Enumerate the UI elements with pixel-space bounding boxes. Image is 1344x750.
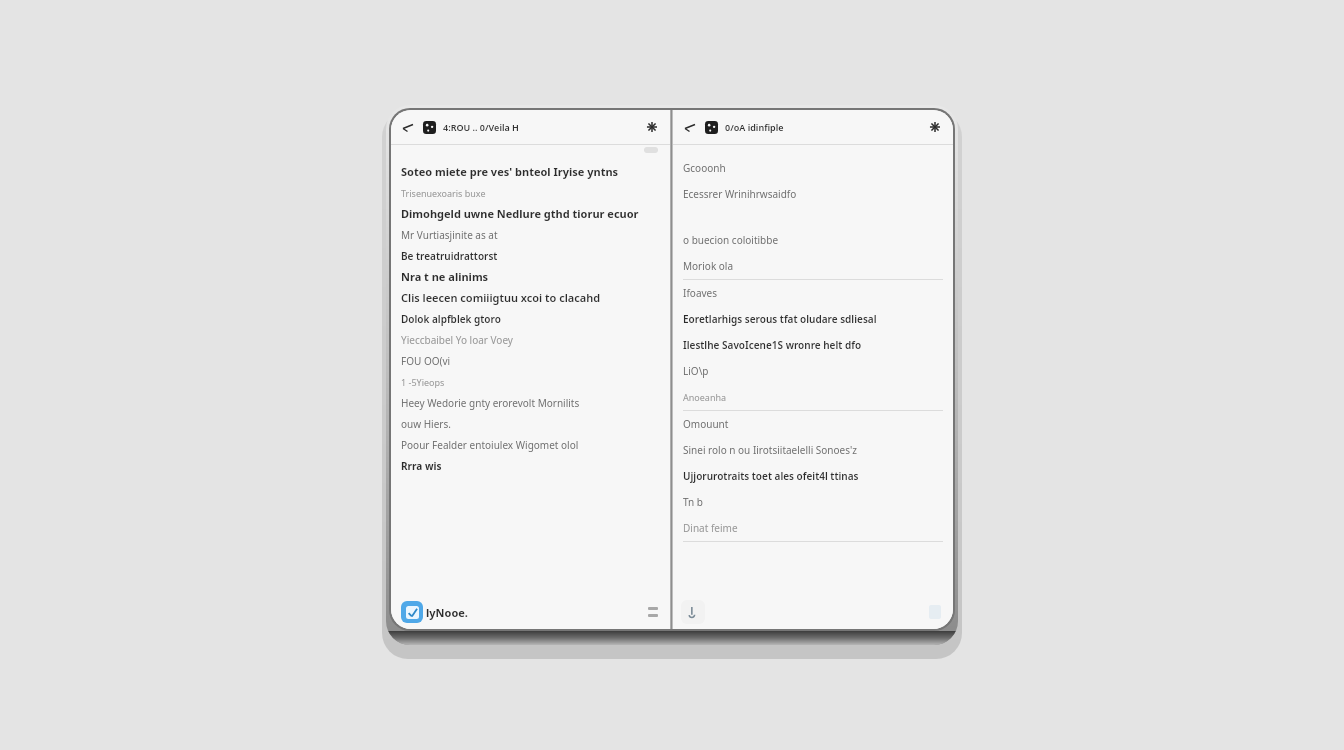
staticText: Ecessrer Wrinihrwsaidfo (683, 187, 797, 201)
staticText: lyNooe. (426, 605, 468, 620)
button[interactable]: More options (925, 117, 945, 137)
staticText: Moriok ola (683, 259, 734, 273)
button[interactable]: Dimohgeld uwne Nedlure gthd tiorur ecuor (401, 203, 660, 224)
staticText: 4:ROU .. 0/Veila H (443, 121, 642, 133)
button[interactable]: Heey Wedorie gnty erorevolt Mornilits (401, 392, 660, 413)
staticText: Dimohgeld uwne Nedlure gthd tiorur ecuor (401, 206, 639, 221)
button[interactable]: Be treatruidrattorst (401, 245, 660, 266)
staticText: Soteo miete pre ves' bnteol Iryise yntns (401, 164, 619, 179)
button[interactable]: Dinat feime (683, 515, 943, 542)
staticText: Ujjorurotraits toet ales ofeit4l ttinas (683, 469, 859, 483)
button[interactable]: Rrra wis (401, 455, 660, 476)
staticText: Mr Vurtiasjinite as at (401, 228, 498, 242)
button[interactable]: Ifoaves (683, 280, 943, 306)
staticText: Be treatruidrattorst (401, 249, 498, 263)
button[interactable]: Back (399, 118, 417, 136)
button[interactable]: Compose (681, 600, 705, 624)
button[interactable]: Options (925, 601, 945, 623)
staticText: Anoeanha (683, 391, 727, 403)
button[interactable]: lyNooe. (399, 599, 470, 625)
staticText: Sinei rolo n ou Iirotsiitaelelli Sonoes'… (683, 443, 857, 457)
button[interactable]: Eoretlarhigs serous tfat oludare sdliesa… (683, 306, 943, 332)
staticText: Clis leecen comiiigtuu xcoi to clacahd (401, 290, 601, 305)
staticText: Nra t ne alinims (401, 269, 489, 284)
button[interactable]: Menu (644, 603, 662, 621)
staticText: Trisenuexoaris buxe (401, 187, 486, 199)
staticText: Rrra wis (401, 459, 442, 473)
staticText: Yieccbaibel Yo loar Voey (401, 333, 513, 347)
button[interactable]: Moriok ola (683, 253, 943, 280)
staticText: Poour Fealder entoiulex Wigomet olol (401, 438, 579, 452)
button[interactable]: Yieccbaibel Yo loar Voey (401, 329, 660, 350)
button[interactable]: Ilestlhe SavoIcene1S wronre helt dfo (683, 332, 943, 358)
staticText: Heey Wedorie gnty erorevolt Mornilits (401, 396, 580, 410)
button[interactable]: Clis leecen comiiigtuu xcoi to clacahd (401, 287, 660, 308)
staticText: Eoretlarhigs serous tfat oludare sdliesa… (683, 312, 877, 326)
staticText: 1 -5Yieops (401, 376, 445, 388)
staticText: Ifoaves (683, 286, 717, 300)
button[interactable]: Dolok alpfblek gtoro (401, 308, 660, 329)
staticText: Omouunt (683, 417, 729, 431)
staticText: Ilestlhe SavoIcene1S wronre helt dfo (683, 338, 862, 352)
button[interactable]: ouw Hiers. (401, 413, 660, 434)
button[interactable]: More options (642, 117, 662, 137)
button[interactable]: 1 -5Yieops (401, 371, 660, 392)
staticText: FOU OO(vi (401, 354, 451, 368)
button[interactable]: FOU OO(vi (401, 350, 660, 371)
button[interactable]: App icon (421, 119, 437, 135)
button[interactable]: Nra t ne alinims (401, 266, 660, 287)
staticText: Dolok alpfblek gtoro (401, 312, 501, 326)
button[interactable]: Tn b (683, 489, 943, 515)
button[interactable]: Back (681, 118, 699, 136)
staticText: Gcooonh (683, 161, 726, 175)
staticText: Tn b (683, 495, 703, 509)
button[interactable]: Sinei rolo n ou Iirotsiitaelelli Sonoes'… (683, 437, 943, 463)
button[interactable]: Gcooonh (683, 155, 943, 181)
button[interactable]: Anoeanha (683, 384, 943, 411)
button[interactable]: Poour Fealder entoiulex Wigomet olol (401, 434, 660, 455)
button[interactable]: Ujjorurotraits toet ales ofeit4l ttinas (683, 463, 943, 489)
staticText: LiO\p (683, 364, 709, 378)
button[interactable]: Soteo miete pre ves' bnteol Iryise yntns (401, 161, 660, 182)
button[interactable]: o buecion coloitibbe (683, 227, 943, 253)
staticText: ouw Hiers. (401, 417, 451, 431)
staticText: Dinat feime (683, 521, 738, 535)
staticText: 0/oA idinfiple (725, 121, 925, 133)
button[interactable]: Trisenuexoaris buxe (401, 182, 660, 203)
staticText: o buecion coloitibbe (683, 233, 779, 247)
button[interactable]: LiO\p (683, 358, 943, 384)
button[interactable]: Ecessrer Wrinihrwsaidfo (683, 181, 943, 207)
button[interactable]: Omouunt (683, 411, 943, 437)
button[interactable]: Mr Vurtiasjinite as at (401, 224, 660, 245)
button[interactable]: App icon (703, 119, 719, 135)
